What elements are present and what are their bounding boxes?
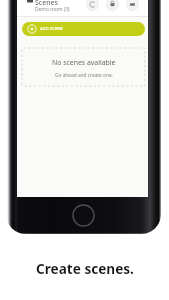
button[interactable]: Refresh [86,0,99,11]
button[interactable]: More options [126,0,139,11]
staticText: Create scenes. [36,259,134,278]
other: Room [27,0,33,4]
button[interactable]: Lock [106,0,119,11]
staticText: No scenes available [52,58,116,67]
staticText: Demo room (3) [35,6,70,13]
other: Home [71,203,96,228]
staticText: ADD SCENE [40,26,63,32]
staticText: Scenes [35,0,58,8]
staticText: Go ahead and create one. [55,72,113,79]
button[interactable]: ADD SCENE [22,22,145,36]
